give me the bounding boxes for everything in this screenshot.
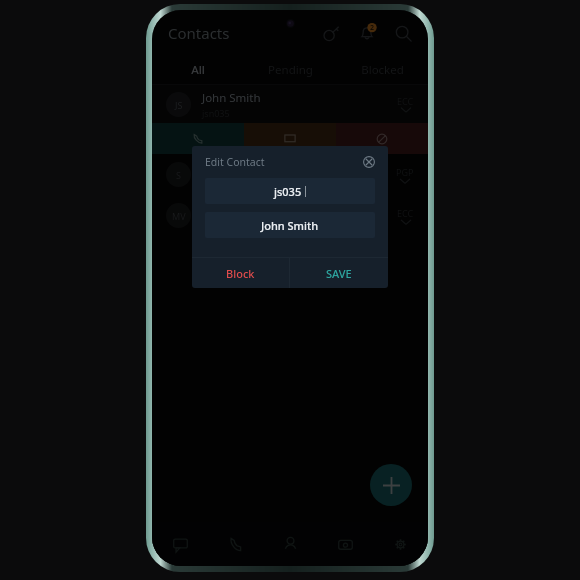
button[interactable]: Chats [152, 522, 208, 566]
staticText: js035 [274, 184, 302, 199]
staticText: Contacts [168, 23, 230, 43]
staticText: S [176, 169, 181, 181]
button[interactable]: Add contact [370, 464, 412, 506]
button[interactable]: All [152, 56, 244, 84]
staticText: John Smith [202, 90, 261, 106]
button[interactable]: Message [244, 123, 336, 154]
staticText: 2 [370, 23, 375, 33]
staticText: Blocked [361, 62, 404, 78]
staticText: Block [226, 266, 255, 281]
staticText: SAVE [326, 266, 352, 281]
button[interactable]: Block [192, 258, 289, 288]
button[interactable]: MV [152, 195, 428, 236]
button[interactable]: S [152, 154, 428, 195]
staticText: ECC [397, 95, 414, 107]
button[interactable]: Settings [373, 522, 428, 566]
staticText: jsn035 [202, 107, 230, 119]
staticText: ECC [397, 207, 414, 219]
button[interactable]: js035 [205, 178, 375, 204]
button[interactable]: Notifications [354, 20, 380, 46]
staticText: MV [172, 210, 186, 222]
button[interactable]: Call [152, 123, 244, 154]
staticText: Edit Contact [205, 155, 265, 169]
button[interactable]: Search [390, 20, 416, 46]
staticText: JS [175, 99, 183, 111]
button[interactable]: SAVE [290, 258, 388, 288]
button[interactable]: John Smith [205, 212, 375, 238]
staticText: All [191, 62, 205, 78]
button[interactable]: Keys [318, 20, 344, 46]
button[interactable]: Close [359, 152, 379, 172]
button[interactable]: Blocked [336, 56, 428, 84]
staticText: Pending [268, 62, 313, 78]
button[interactable]: Block [336, 123, 428, 154]
staticText: John Smith [261, 218, 319, 233]
button[interactable]: Pending [244, 56, 336, 84]
button[interactable]: JS [152, 85, 428, 123]
staticText: PGP [396, 166, 414, 178]
